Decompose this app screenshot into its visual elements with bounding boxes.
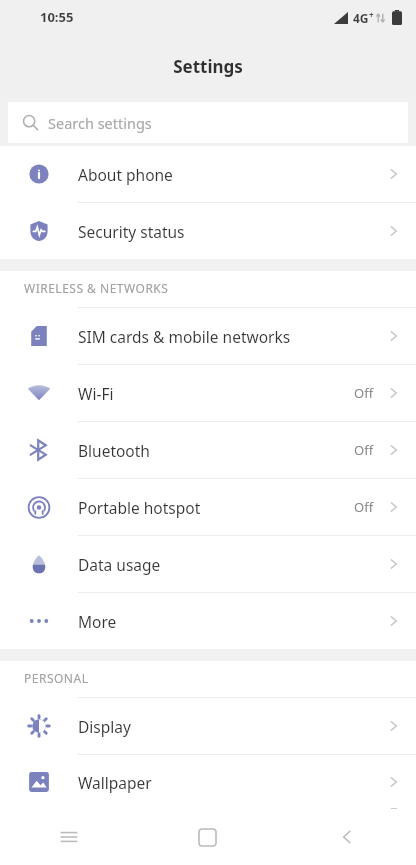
staticText: More — [78, 611, 386, 632]
staticText: 4G — [353, 10, 369, 26]
button[interactable]: Display — [0, 698, 416, 755]
button[interactable]: SIM cards & mobile networks — [0, 308, 416, 365]
button[interactable]: More — [0, 593, 416, 649]
staticText: Display — [78, 716, 386, 737]
button[interactable]: Search settings — [8, 102, 408, 143]
staticText: SIM cards & mobile networks — [78, 326, 386, 347]
button[interactable]: Bluetooth — [0, 422, 416, 479]
staticText: PERSONAL — [24, 670, 89, 686]
button[interactable]: About phone — [0, 146, 416, 203]
staticText: + — [369, 9, 374, 20]
button[interactable]: Wi-Fi — [0, 365, 416, 422]
staticText: Wallpaper — [78, 772, 386, 793]
button[interactable]: Portable hotspot — [0, 479, 416, 536]
button[interactable]: Back — [277, 809, 416, 865]
button[interactable]: Security status — [0, 203, 416, 259]
button[interactable]: Wallpaper — [0, 755, 416, 809]
staticText: Bluetooth — [78, 440, 354, 461]
staticText: Off — [354, 498, 374, 516]
staticText: Off — [354, 384, 374, 402]
staticText: Off — [354, 441, 374, 459]
button[interactable]: Home — [138, 809, 277, 865]
staticText: About phone — [78, 164, 386, 185]
staticText: Portable hotspot — [78, 497, 354, 518]
staticText: Data usage — [78, 554, 386, 575]
staticText: Settings — [173, 55, 243, 78]
staticText: Search settings — [48, 113, 152, 133]
button[interactable]: Data usage — [0, 536, 416, 593]
staticText: 10:55 — [40, 8, 74, 26]
staticText: Wi-Fi — [78, 383, 354, 404]
button[interactable]: Menu — [0, 809, 138, 865]
staticText: WIRELESS & NETWORKS — [24, 280, 169, 296]
staticText: Security status — [78, 221, 386, 242]
